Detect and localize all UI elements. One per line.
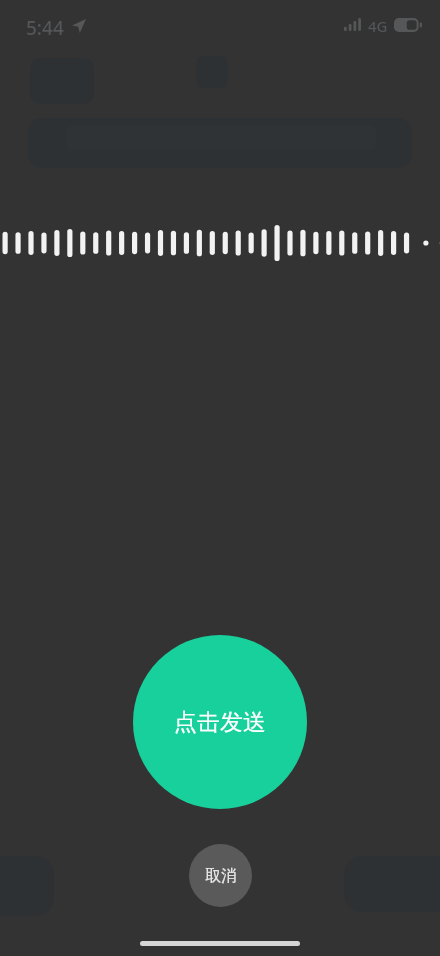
staticText: 4G <box>368 16 388 36</box>
button[interactable]: 点击发送 <box>133 635 307 809</box>
button[interactable]: 取消 <box>189 844 252 907</box>
staticText: 点击发送 <box>174 708 266 737</box>
staticText: 取消 <box>205 866 237 886</box>
other: Battery <box>394 18 424 32</box>
staticText: 5:44 <box>26 15 64 41</box>
other: Location active <box>72 19 86 33</box>
